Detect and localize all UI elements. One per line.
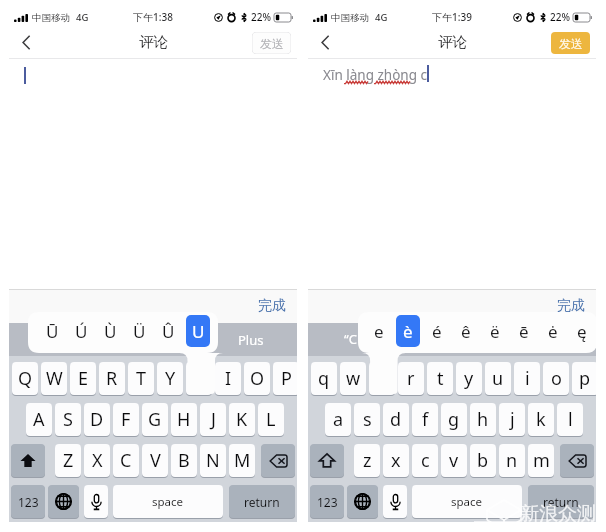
button[interactable]: z [354,444,380,477]
button[interactable]: 123 [11,485,45,518]
button[interactable]: M [229,444,255,477]
button[interactable]: 发送 [551,32,590,54]
staticText: 完成 [557,297,585,315]
staticText: space [152,494,184,510]
button[interactable]: j [499,403,525,436]
button[interactable]: 发送 [252,32,291,54]
button[interactable]: Z [55,444,81,477]
staticText: è [403,320,413,343]
button[interactable]: Ū [38,315,67,347]
button[interactable]: space [113,485,223,518]
button[interactable]: J [200,403,226,436]
button[interactable]: return [528,485,594,518]
button[interactable]: s [354,403,380,436]
button[interactable]: O [244,362,270,395]
staticText: Ü [133,320,146,343]
button[interactable]: return [229,485,295,518]
button[interactable]: C [113,444,139,477]
button[interactable]: k [528,403,554,436]
staticText: X [92,448,103,473]
button[interactable]: K [229,403,255,436]
button[interactable]: t [427,362,453,395]
button[interactable]: R [99,362,125,395]
staticText: M [234,448,251,473]
button[interactable]: X [84,444,110,477]
button[interactable]: o [543,362,569,395]
button[interactable]: c [412,444,438,477]
button[interactable]: l [557,403,583,436]
button[interactable]: space [412,485,522,518]
button[interactable]: ë [480,315,509,347]
button[interactable]: p [572,362,596,395]
button[interactable]: e [369,362,395,395]
button[interactable]: D [84,403,110,436]
button[interactable]: g [441,403,467,436]
button[interactable]: L [258,403,284,436]
button[interactable]: Ú [67,315,96,347]
button[interactable]: x [383,444,409,477]
button[interactable] [84,485,108,518]
button[interactable] [11,444,45,477]
button[interactable]: W [41,362,67,395]
staticText: ē [519,320,529,343]
staticText: f [422,407,429,432]
button[interactable]: T [128,362,154,395]
button[interactable]: n [499,444,525,477]
button[interactable] [310,444,344,477]
button[interactable]: S [55,403,81,436]
button[interactable]: m [528,444,554,477]
button[interactable]: E [70,362,96,395]
button[interactable]: 完成 [258,297,286,315]
button[interactable]: é [422,315,451,347]
button[interactable]: U [186,362,212,395]
button[interactable]: i [514,362,540,395]
button[interactable]: f [412,403,438,436]
button[interactable]: ė [538,315,567,347]
button[interactable]: 完成 [557,297,585,315]
button[interactable]: P [273,362,297,395]
button[interactable]: N [200,444,226,477]
button[interactable]: ê [451,315,480,347]
staticText: ë [490,320,500,343]
button[interactable]: b [470,444,496,477]
button[interactable]: Y [157,362,183,395]
button[interactable]: Q [12,362,38,395]
button[interactable] [261,444,295,477]
staticText: Plus [238,331,264,349]
button[interactable]: e [364,315,393,347]
button[interactable]: d [383,403,409,436]
button[interactable]: w [340,362,366,395]
button[interactable]: U [183,315,212,347]
button[interactable]: B [171,444,197,477]
button[interactable]: F [113,403,139,436]
button[interactable]: q [311,362,337,395]
staticText: d [390,407,402,432]
staticText: j [510,407,515,432]
button[interactable]: G [142,403,168,436]
button[interactable] [383,485,407,518]
button[interactable]: A [26,403,52,436]
button[interactable]: Back [9,26,43,59]
button[interactable] [560,444,594,477]
staticText: 下午1:38 [133,10,173,24]
button[interactable]: Ü [125,315,154,347]
button[interactable]: r [398,362,424,395]
button[interactable]: ē [509,315,538,347]
button[interactable] [347,485,378,518]
button[interactable]: v [441,444,467,477]
button[interactable]: Û [154,315,183,347]
button[interactable]: I [215,362,241,395]
button[interactable] [48,485,79,518]
button[interactable]: Back [308,26,342,59]
button[interactable]: h [470,403,496,436]
button[interactable]: u [485,362,511,395]
staticText: b [477,448,489,473]
button[interactable]: V [142,444,168,477]
button[interactable]: ę [567,315,596,347]
button[interactable]: H [171,403,197,436]
button[interactable]: 123 [310,485,344,518]
button[interactable]: Ù [96,315,125,347]
button[interactable]: a [325,403,351,436]
button[interactable]: y [456,362,482,395]
button[interactable]: è [393,315,422,347]
